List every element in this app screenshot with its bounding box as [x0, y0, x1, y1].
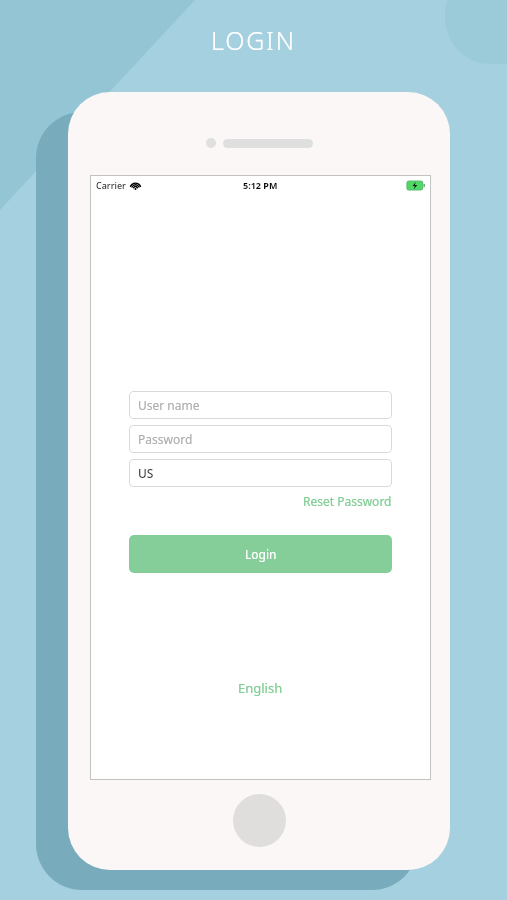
staticText: Carrier — [96, 179, 126, 191]
button[interactable]: User name — [129, 391, 392, 419]
button[interactable]: English — [129, 679, 392, 697]
button[interactable]: Home — [233, 794, 286, 847]
staticText: Reset Password — [303, 493, 392, 509]
staticText: English — [238, 679, 283, 697]
staticText: User name — [138, 397, 200, 413]
staticText: LOGIN — [211, 23, 296, 57]
button[interactable]: Password — [129, 425, 392, 453]
button[interactable]: Login — [129, 535, 392, 573]
button[interactable]: Reset Password — [129, 493, 392, 509]
staticText: Login — [245, 546, 277, 562]
staticText: 5:12 PM — [243, 179, 278, 191]
staticText: Password — [138, 431, 193, 447]
staticText: US — [138, 465, 154, 481]
button[interactable]: US — [129, 459, 392, 487]
